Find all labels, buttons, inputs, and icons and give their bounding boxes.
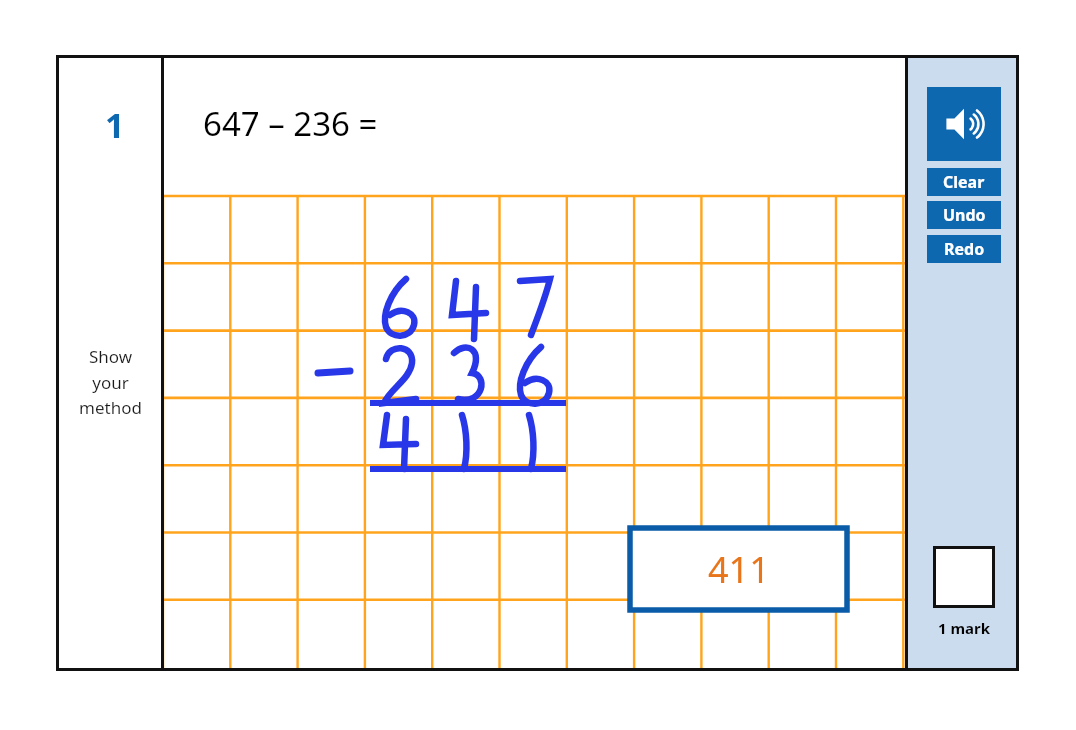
button[interactable]: Undo: [927, 201, 1001, 229]
staticText: 647 – 236 =: [203, 101, 378, 146]
staticText: 411: [708, 545, 770, 594]
staticText: 1 mark: [938, 618, 991, 638]
button[interactable]: Play audio: [927, 87, 1001, 161]
button[interactable]: Redo: [927, 235, 1001, 263]
staticText: Redo: [944, 238, 985, 260]
staticText: Show your method: [79, 345, 142, 419]
staticText: 1: [105, 102, 125, 146]
staticText: Clear: [943, 171, 985, 193]
button[interactable]: Clear: [927, 168, 1001, 196]
staticText: Undo: [943, 204, 986, 226]
